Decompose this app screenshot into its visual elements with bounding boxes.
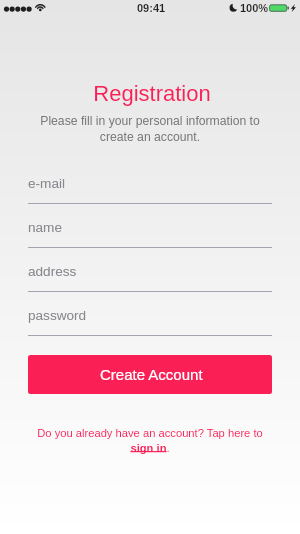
staticText: Do you already have an account? Tap here… xyxy=(14,427,286,454)
staticText: address xyxy=(28,264,77,279)
staticText: Create Account xyxy=(100,366,203,383)
staticText: 09:41 xyxy=(137,2,166,14)
staticText: name xyxy=(28,220,63,235)
staticText: Please fill in your personal information… xyxy=(14,114,286,143)
button[interactable]: Do you already have an account? Tap here… xyxy=(0,427,300,454)
staticText: password xyxy=(28,308,87,323)
staticText: Registration xyxy=(2,81,300,106)
staticText: e-mail xyxy=(28,176,66,191)
staticText: 100% xyxy=(240,2,269,14)
button[interactable]: Create Account xyxy=(28,355,272,394)
